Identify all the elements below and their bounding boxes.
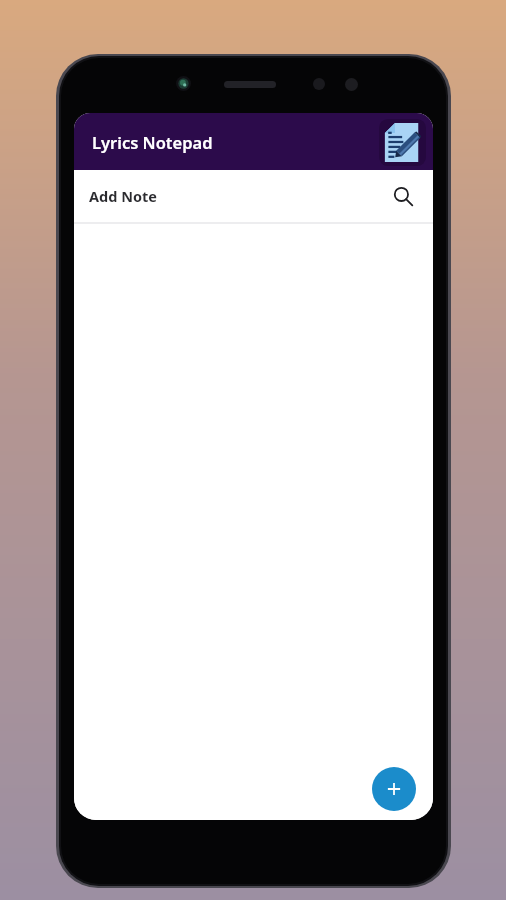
button[interactable]: Add note bbox=[372, 767, 416, 811]
button[interactable]: Add Note bbox=[74, 170, 433, 222]
button[interactable]: Notepad bbox=[376, 116, 428, 168]
button[interactable]: Search bbox=[389, 182, 417, 210]
staticText: Lyrics Notepad bbox=[92, 131, 213, 153]
staticText: Add Note bbox=[89, 186, 157, 206]
